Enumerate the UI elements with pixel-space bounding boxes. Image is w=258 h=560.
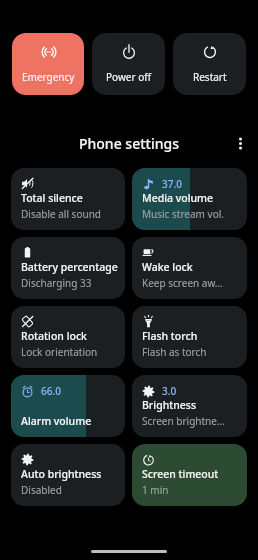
staticText: Power off	[106, 70, 152, 84]
staticText: 66.0	[41, 384, 61, 398]
staticText: Disabled	[21, 483, 62, 497]
staticText: 3.0	[162, 384, 177, 398]
staticText: Phone settings	[79, 134, 179, 153]
staticText: Brightness	[142, 398, 197, 412]
button[interactable]: Wake lock	[132, 237, 247, 299]
staticText: Screen timeout	[142, 467, 219, 481]
staticText: Total silence	[21, 191, 83, 205]
button[interactable]: Rotation lock	[11, 306, 125, 368]
button[interactable]: 37.0	[132, 168, 247, 230]
staticText: Lock orientation	[21, 345, 98, 359]
button[interactable]: Screen timeout	[132, 444, 247, 506]
staticText: 1 min	[142, 483, 169, 497]
button[interactable]: 3.0	[132, 375, 247, 437]
staticText: Music stream vol.	[142, 207, 224, 221]
staticText: Flash as torch	[142, 345, 207, 359]
button[interactable]: Total silence	[11, 168, 125, 230]
button[interactable]: 66.0	[11, 375, 125, 437]
button[interactable]: Battery percentage	[11, 237, 125, 299]
staticText: Restart	[193, 70, 227, 84]
staticText: Media volume	[142, 191, 214, 205]
staticText: Flash torch	[142, 329, 198, 343]
staticText: Disable all sound	[21, 207, 101, 221]
staticText: Alarm volume	[21, 414, 92, 428]
button[interactable]: Power off	[92, 33, 165, 95]
button[interactable]: Emergency	[12, 33, 84, 95]
staticText: Screen brightne…	[142, 414, 225, 428]
staticText: Auto brightness	[21, 467, 102, 481]
button[interactable]: Restart	[173, 33, 246, 95]
staticText: Discharging 33	[21, 276, 92, 290]
staticText: Emergency	[22, 70, 75, 84]
staticText: Rotation lock	[21, 329, 87, 343]
button[interactable]: Auto brightness	[11, 444, 125, 506]
button[interactable]: More options	[227, 130, 253, 156]
staticText: Wake lock	[142, 260, 193, 274]
staticText: Keep screen aw…	[142, 276, 223, 290]
staticText: 37.0	[162, 177, 182, 191]
staticText: Battery percentage	[21, 260, 118, 274]
button[interactable]: Flash torch	[132, 306, 247, 368]
